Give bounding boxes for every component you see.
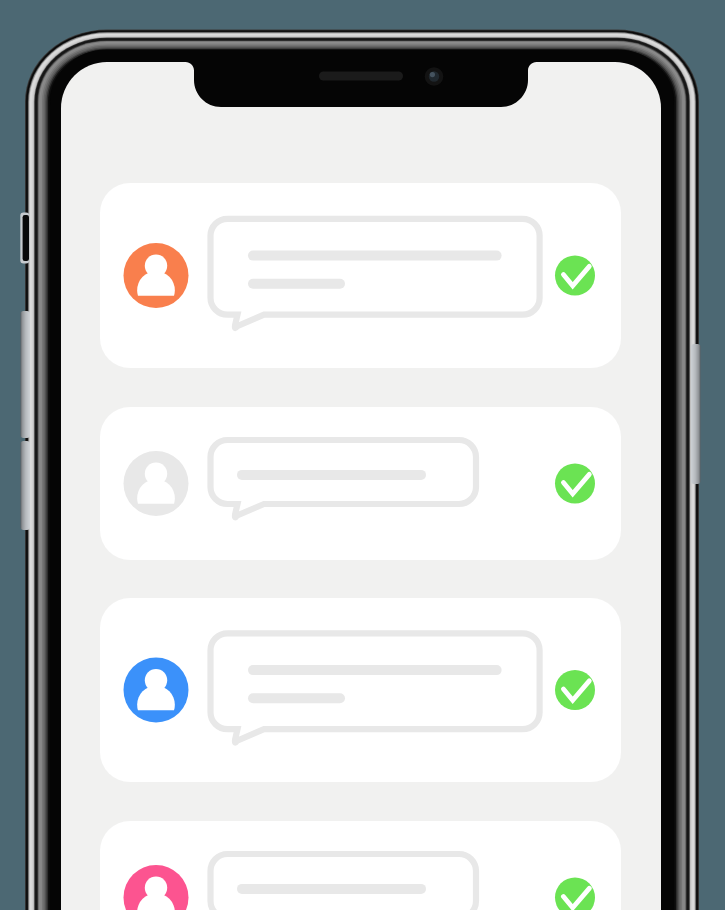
button[interactable]: Message from Sophia [100,821,621,910]
button[interactable]: Open profile [123,243,188,308]
button[interactable]: Open profile [123,451,188,516]
button[interactable]: Delivered [555,670,595,710]
button[interactable]: Message from Oliver [100,598,621,782]
button[interactable]: Delivered [555,463,595,503]
button[interactable]: Open profile [123,657,188,722]
button[interactable]: Message from Amelia [100,183,621,368]
button[interactable]: Delivered [555,877,595,910]
button[interactable]: Message from Noah [100,407,621,560]
button[interactable]: Delivered [555,255,595,295]
button[interactable]: Open profile [123,865,188,910]
